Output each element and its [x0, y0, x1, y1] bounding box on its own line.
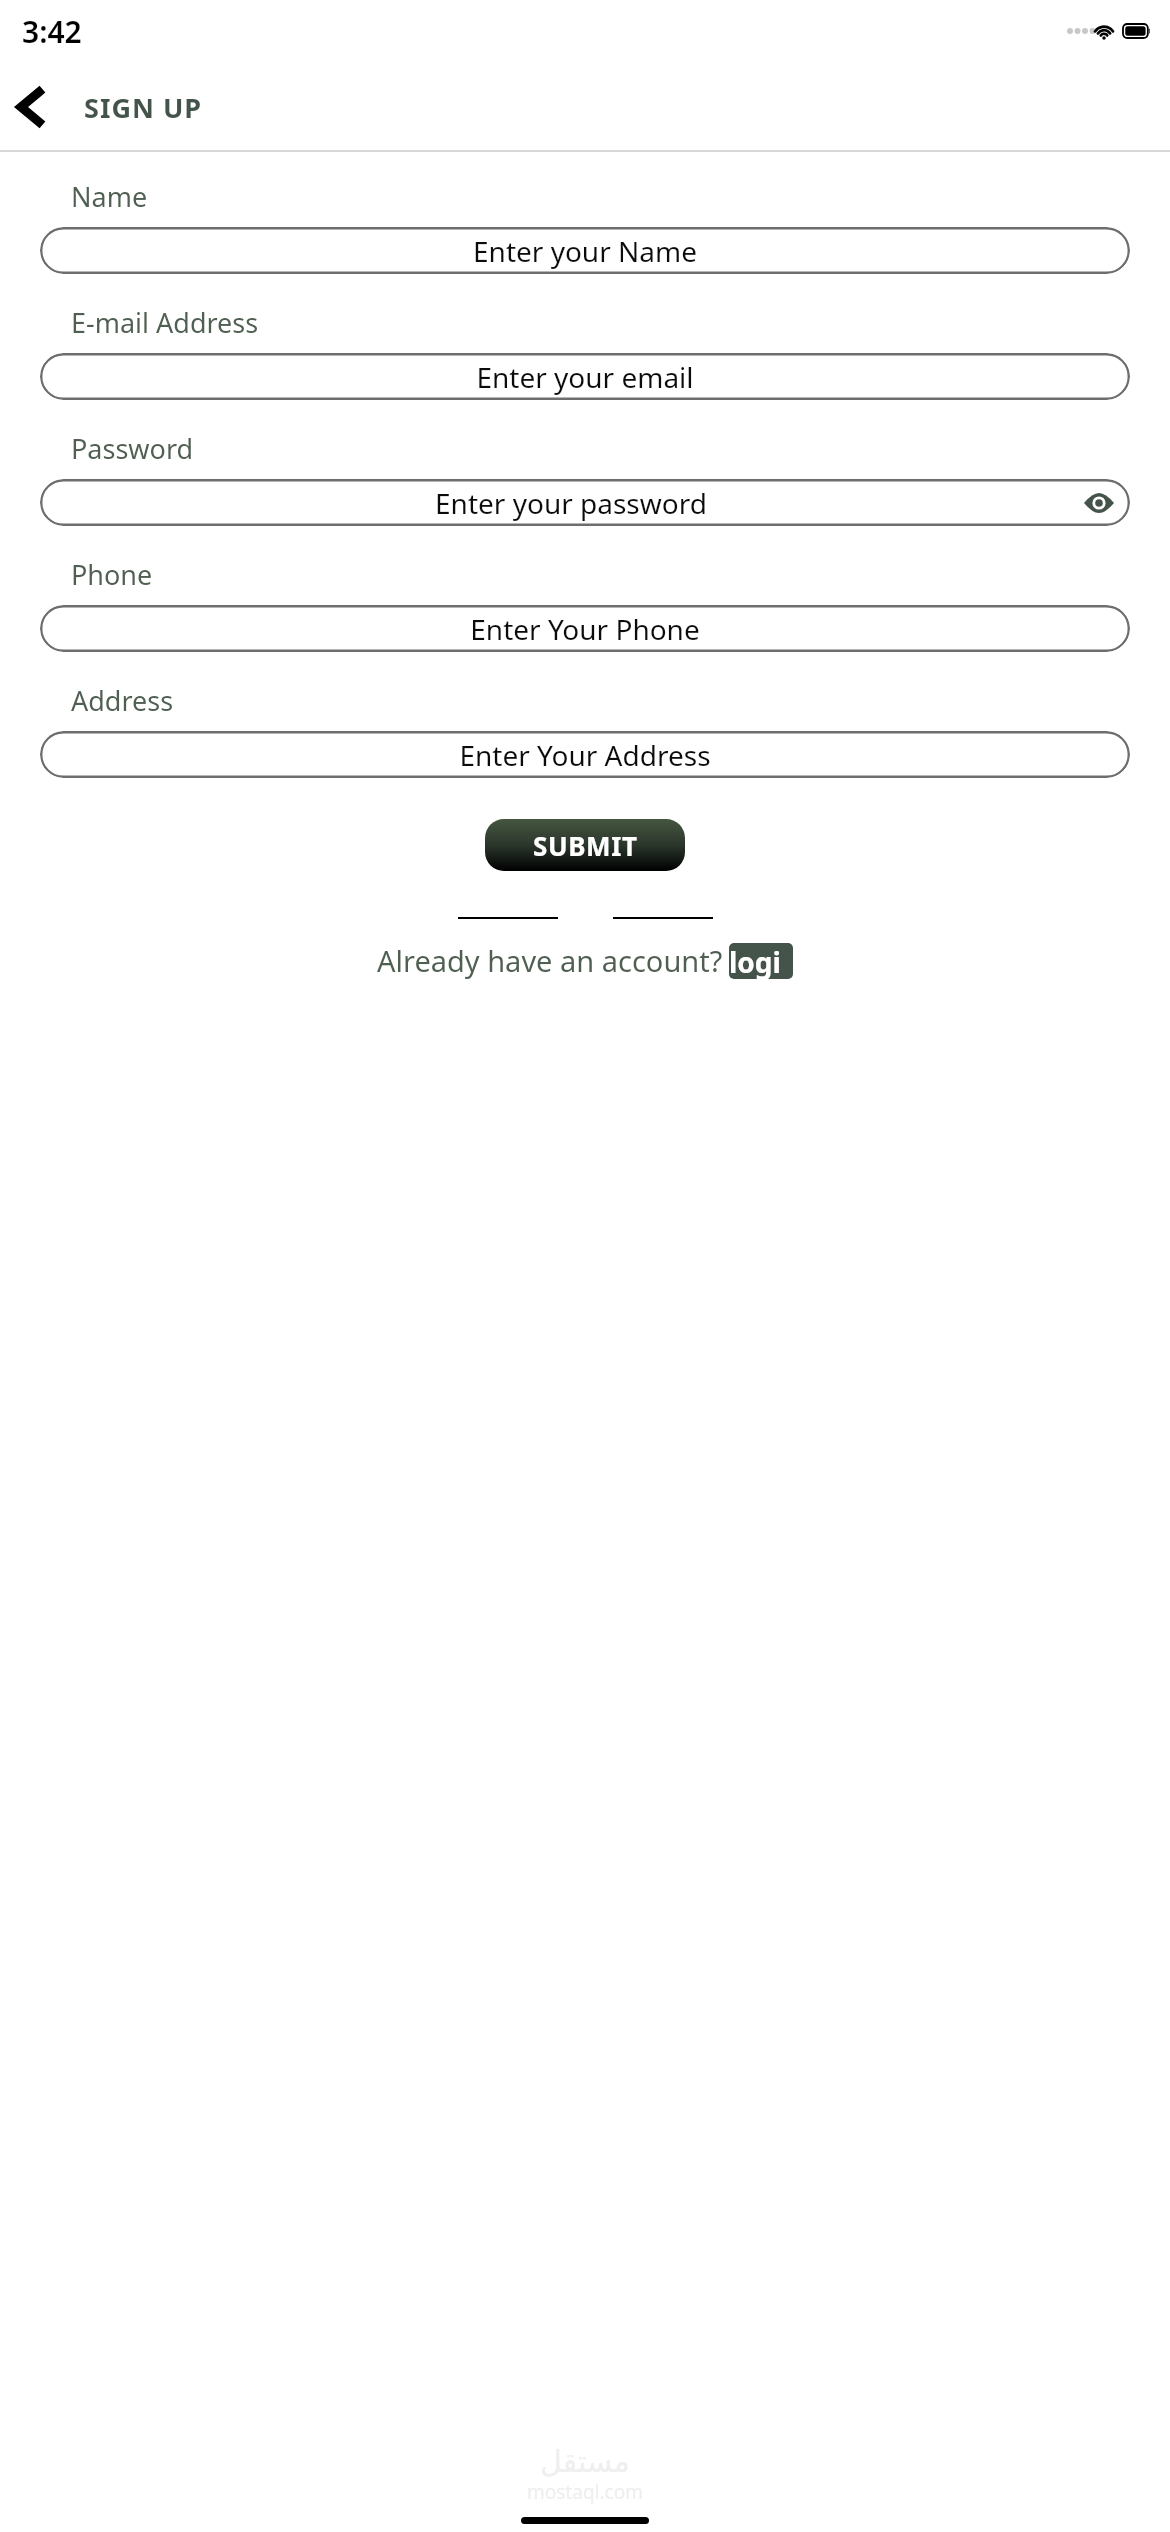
staticText: Password — [71, 430, 194, 467]
staticText: Name — [71, 178, 148, 215]
button[interactable]: Back — [6, 83, 54, 131]
button[interactable]: Enter your email — [40, 353, 1130, 400]
staticText: SUBMIT — [533, 828, 638, 863]
staticText: Enter Your Phone — [470, 610, 700, 648]
staticText: Enter your password — [435, 484, 707, 522]
staticText: mostaql.com — [527, 2479, 643, 2505]
staticText: login — [729, 943, 793, 979]
staticText: Enter Your Address — [459, 736, 711, 774]
staticText: Already have an account? — [377, 941, 723, 980]
staticText: 3:42 — [22, 11, 82, 52]
staticText: E-mail Address — [71, 304, 259, 341]
button[interactable]: login — [729, 943, 793, 979]
staticText: Address — [71, 682, 174, 719]
staticText: Enter your Name — [473, 232, 697, 270]
button[interactable]: SUBMIT — [485, 819, 685, 871]
staticText: SIGN UP — [84, 89, 203, 126]
button[interactable]: Enter Your Address — [40, 731, 1130, 778]
button[interactable]: Enter your password — [40, 479, 1130, 526]
button[interactable]: Enter your Name — [40, 227, 1130, 274]
button[interactable]: Enter Your Phone — [40, 605, 1130, 652]
staticText: مستقل — [540, 2444, 630, 2479]
staticText: Phone — [71, 556, 153, 593]
staticText: Enter your email — [476, 358, 694, 396]
button[interactable]: Show password — [1082, 486, 1116, 520]
